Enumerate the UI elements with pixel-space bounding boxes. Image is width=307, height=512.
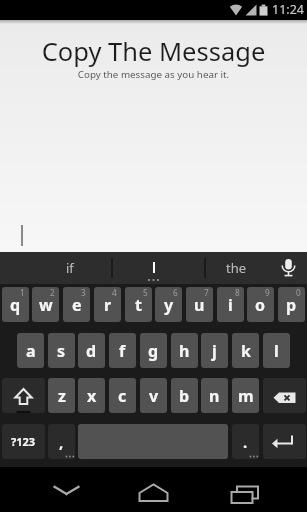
staticText: ,: [59, 432, 64, 452]
button[interactable]: 4: [94, 287, 121, 322]
staticText: w: [39, 294, 53, 316]
button[interactable]: h: [171, 333, 198, 368]
button[interactable]: ?123: [2, 424, 45, 459]
staticText: d: [86, 340, 97, 362]
staticText: s: [57, 340, 66, 362]
button[interactable]: d: [78, 333, 105, 368]
button[interactable]: j: [201, 333, 228, 368]
button[interactable]: b: [171, 378, 198, 413]
button[interactable]: v: [140, 378, 167, 413]
staticText: 11:24: [272, 1, 304, 18]
button[interactable]: 1: [2, 287, 29, 322]
button[interactable]: .: [232, 424, 259, 459]
staticText: 5: [143, 287, 148, 298]
button[interactable]: l: [263, 333, 290, 368]
button[interactable]: 0: [278, 287, 305, 322]
staticText: g: [148, 340, 159, 362]
staticText: 6: [173, 287, 178, 298]
button[interactable]: 6: [155, 287, 182, 322]
staticText: u: [194, 294, 205, 316]
button[interactable]: the: [205, 252, 267, 284]
staticText: i: [228, 294, 233, 316]
button[interactable]: [112, 252, 205, 284]
staticText: .: [243, 432, 248, 452]
staticText: if: [66, 259, 74, 277]
button[interactable]: x: [78, 378, 105, 413]
staticText: b: [179, 385, 190, 407]
button[interactable]: [263, 378, 306, 413]
staticText: x: [87, 385, 97, 407]
staticText: h: [179, 340, 190, 362]
button[interactable]: z: [48, 378, 75, 413]
staticText: p: [286, 294, 297, 316]
button[interactable]: [214, 467, 275, 512]
staticText: k: [241, 340, 251, 362]
staticText: Copy The Message: [0, 34, 307, 68]
button[interactable]: 5: [125, 287, 152, 322]
button[interactable]: if: [14, 252, 126, 284]
staticText: 7: [204, 287, 209, 298]
staticText: v: [149, 385, 159, 407]
button[interactable]: 7: [186, 287, 213, 322]
button[interactable]: a: [17, 333, 44, 368]
staticText: 3: [81, 287, 86, 298]
button[interactable]: [2, 378, 45, 413]
staticText: q: [10, 294, 21, 316]
staticText: l: [274, 340, 279, 362]
button[interactable]: m: [232, 378, 259, 413]
staticText: r: [104, 294, 112, 316]
staticText: t: [135, 294, 142, 316]
staticText: e: [72, 294, 82, 316]
button[interactable]: c: [109, 378, 136, 413]
staticText: 4: [112, 287, 117, 298]
button[interactable]: 3: [63, 287, 90, 322]
staticText: a: [26, 340, 36, 362]
staticText: y: [164, 294, 174, 316]
staticText: the: [226, 259, 247, 277]
button[interactable]: n: [201, 378, 228, 413]
button[interactable]: s: [48, 333, 75, 368]
button[interactable]: f: [109, 333, 136, 368]
button[interactable]: [267, 252, 307, 284]
staticText: 9: [265, 287, 270, 298]
button[interactable]: g: [140, 333, 167, 368]
button[interactable]: 2: [32, 287, 59, 322]
staticText: Copy the message as you hear it.: [0, 68, 307, 84]
staticText: z: [58, 385, 66, 407]
staticText: 1: [20, 287, 25, 298]
staticText: ?123: [11, 434, 36, 449]
staticText: m: [238, 385, 254, 407]
staticText: c: [118, 385, 127, 407]
staticText: f: [119, 340, 126, 362]
staticText: o: [255, 294, 266, 316]
button[interactable]: ,: [48, 424, 75, 459]
button[interactable]: 9: [247, 287, 274, 322]
staticText: j: [212, 340, 217, 362]
staticText: n: [209, 385, 220, 407]
button[interactable]: [123, 467, 184, 512]
staticText: 2: [50, 287, 55, 298]
button[interactable]: 8: [217, 287, 244, 322]
button[interactable]: [36, 467, 97, 512]
staticText: 8: [235, 287, 240, 298]
button[interactable]: k: [232, 333, 259, 368]
button[interactable]: [263, 424, 306, 459]
staticText: 0: [296, 287, 301, 298]
